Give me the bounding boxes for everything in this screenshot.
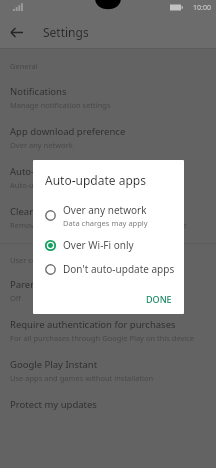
staticText: For all purchases through Google Play on… (10, 333, 195, 343)
staticText: DONE (146, 293, 172, 305)
staticText: Data charges may apply (63, 218, 148, 228)
staticText: Off (10, 293, 22, 303)
button[interactable]: Require authentication for purchases (0, 303, 216, 343)
staticText: Over Wi-Fi only (63, 238, 134, 252)
staticText: Use apps and games without installation (10, 373, 154, 383)
staticText: Auto-update apps (10, 165, 90, 178)
staticText: Protect my updates (10, 398, 97, 411)
staticText: Google Play Instant (10, 358, 98, 371)
button[interactable]: Over Wi-Fi only (33, 233, 184, 257)
staticText: Auto-update apps over Wi-Fi only (10, 180, 127, 190)
staticText: Over any network (63, 203, 147, 217)
button[interactable]: Back (0, 16, 32, 48)
button[interactable]: Parental controls (0, 265, 216, 303)
button[interactable]: Google Play Instant (0, 343, 216, 383)
button[interactable]: Don't auto-update apps (33, 257, 184, 281)
staticText: Parental controls (10, 278, 86, 291)
button[interactable]: Clear local search history (0, 190, 216, 230)
staticText: Clear local search history (10, 205, 122, 218)
staticText: General (10, 61, 38, 71)
staticText: App download preference (10, 125, 126, 138)
staticText: User controls (10, 255, 57, 265)
button[interactable]: Auto-update apps (0, 150, 216, 190)
button[interactable]: App download preference (0, 110, 216, 150)
staticText: Over any network (10, 140, 73, 150)
button[interactable]: Protect my updates (0, 383, 216, 411)
button[interactable]: DONE (134, 288, 184, 310)
staticText: Settings (43, 24, 89, 40)
staticText: Auto-update apps (45, 172, 146, 188)
staticText: Don't auto-update apps (63, 262, 175, 276)
staticText: Notifications (10, 85, 67, 98)
staticText: Removes searches you have done from this… (10, 220, 187, 230)
staticText: 10:00 (193, 3, 211, 13)
button[interactable]: Over any network (33, 198, 184, 233)
staticText: Require authentication for purchases (10, 318, 176, 331)
staticText: Manage notification settings (10, 100, 111, 110)
button[interactable]: Notifications (0, 71, 216, 110)
